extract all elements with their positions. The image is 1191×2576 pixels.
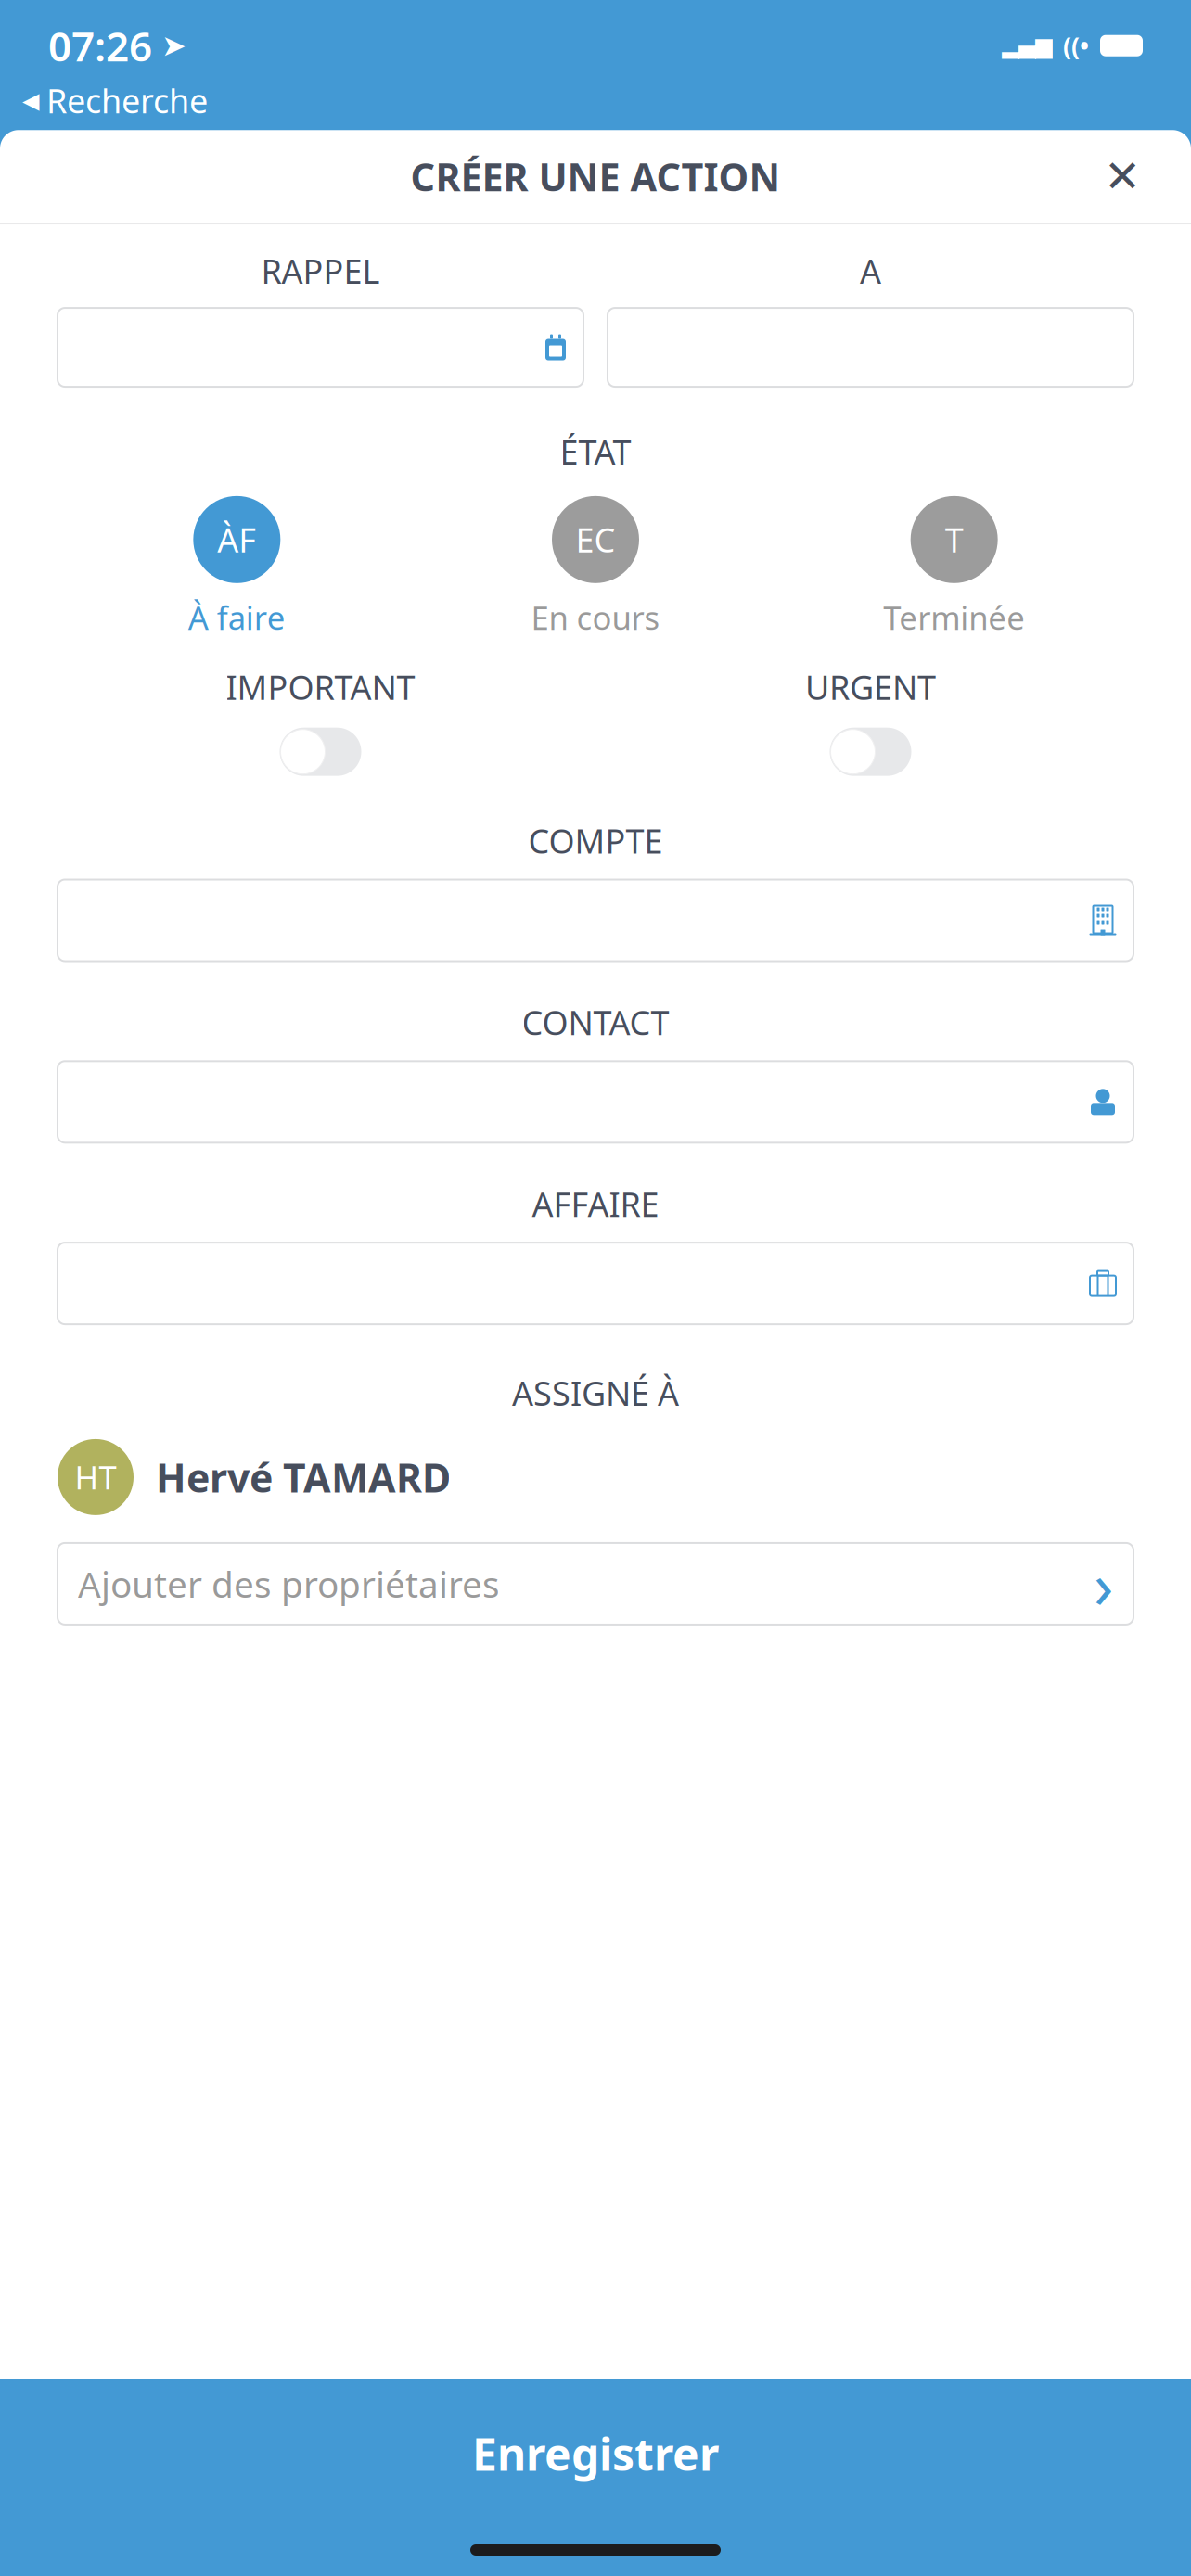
button[interactable]: Ajouter des propriétaires [58, 1543, 1133, 1625]
button[interactable]: Activer [830, 728, 911, 776]
staticText: T [945, 517, 963, 562]
button[interactable]: ÀF [58, 496, 416, 639]
staticText: ▂▄▆ [1002, 33, 1052, 58]
staticText: AFFAIRE [532, 1182, 659, 1226]
staticText: Ajouter des propriétaires [78, 1560, 500, 1607]
staticText: ◀ [22, 88, 39, 113]
staticText: HT [75, 1456, 116, 1498]
button[interactable]: T [775, 496, 1133, 639]
staticText: A [860, 249, 881, 293]
staticText: 07:26 [48, 19, 152, 73]
button[interactable]: Enregistrer [0, 2379, 1191, 2576]
staticText: ✕ [1104, 151, 1141, 202]
staticText: Recherche [46, 78, 208, 123]
staticText: CONTACT [522, 1000, 669, 1044]
staticText: Hervé TAMARD [156, 1451, 451, 1503]
button[interactable] [58, 1243, 1133, 1324]
staticText: COMPTE [528, 819, 663, 863]
staticText: À faire [188, 596, 286, 639]
button[interactable]: Fermer [1089, 143, 1156, 210]
staticText: CRÉER UNE ACTION [410, 151, 781, 202]
button[interactable]: ◀ [22, 78, 208, 123]
staticText: Terminée [883, 596, 1025, 639]
staticText: Enregistrer [472, 2424, 719, 2483]
staticText: RAPPEL [261, 249, 380, 293]
staticText: EC [576, 517, 615, 562]
staticText: ASSIGNÉ À [512, 1371, 679, 1415]
staticText: ÉTAT [560, 429, 631, 474]
button[interactable] [58, 308, 583, 387]
button[interactable]: Activer [280, 728, 361, 776]
staticText: ➤ [161, 29, 186, 62]
staticText: ((• [1063, 29, 1089, 62]
staticText: › [1094, 1541, 1113, 1626]
button[interactable] [608, 308, 1133, 387]
button[interactable] [58, 880, 1133, 961]
staticText: En cours [531, 596, 660, 639]
button[interactable]: EC [416, 496, 775, 639]
staticText: ÀF [217, 517, 256, 562]
button[interactable] [58, 1061, 1133, 1143]
staticText: URGENT [805, 665, 936, 709]
staticText: IMPORTANT [226, 665, 415, 709]
